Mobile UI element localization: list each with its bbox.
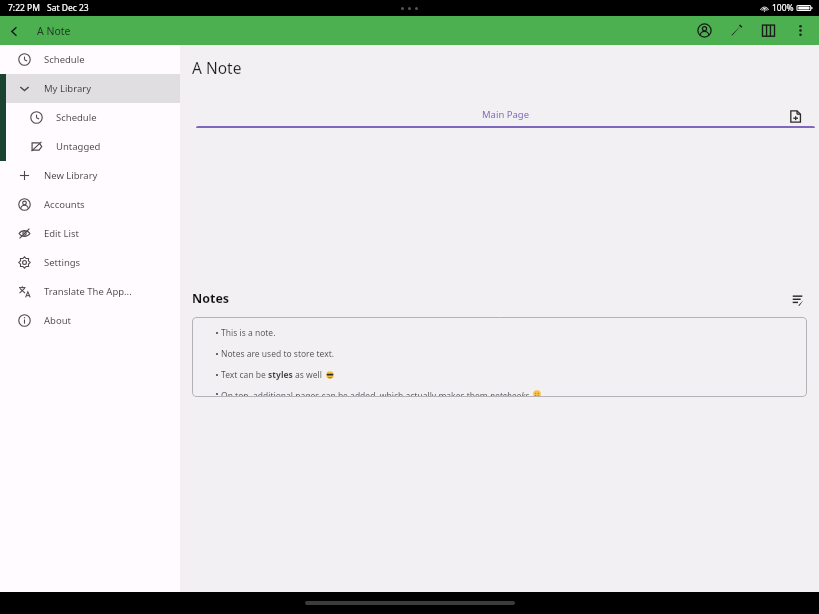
button[interactable]: View columns xyxy=(752,16,784,45)
button[interactable]: Settings xyxy=(0,248,180,277)
staticText: Untagged xyxy=(56,140,101,153)
button[interactable]: Edit xyxy=(720,16,752,45)
staticText: 100% xyxy=(772,2,794,14)
button[interactable]: Schedule xyxy=(0,103,180,132)
staticText: Main Page xyxy=(482,108,530,121)
button[interactable]: Main Page xyxy=(192,106,819,128)
button[interactable]: Add page xyxy=(785,106,805,126)
staticText: About xyxy=(44,314,71,327)
staticText: My Library xyxy=(44,82,92,95)
staticText: Schedule xyxy=(44,53,85,66)
staticText: Settings xyxy=(44,256,81,269)
button[interactable]: This is a note. xyxy=(192,317,807,397)
staticText: A Note xyxy=(37,24,71,38)
button[interactable]: My Library xyxy=(0,74,180,103)
button[interactable]: More options xyxy=(784,16,816,45)
button[interactable]: Untagged xyxy=(0,132,180,161)
staticText: Translate The App... xyxy=(44,285,132,298)
staticText: This is a note. xyxy=(221,327,276,339)
button[interactable]: About xyxy=(0,306,180,335)
button[interactable]: Accounts xyxy=(0,190,180,219)
staticText: Accounts xyxy=(44,198,85,211)
button[interactable]: New Library xyxy=(0,161,180,190)
staticText: Schedule xyxy=(56,111,97,124)
staticText: Notes xyxy=(192,290,230,307)
staticText: 7:22 PM xyxy=(8,2,40,14)
staticText: Edit List xyxy=(44,227,79,240)
staticText: A Note xyxy=(192,57,242,78)
staticText: Text can be styles as well xyxy=(221,369,325,381)
staticText: Sat Dec 23 xyxy=(47,2,89,14)
button[interactable]: Back xyxy=(0,17,28,45)
button[interactable]: Edit List xyxy=(0,219,180,248)
button[interactable]: Account xyxy=(688,16,720,45)
staticText: Notes are used to store text. xyxy=(221,348,335,360)
staticText: New Library xyxy=(44,169,98,182)
button[interactable]: Translate The App... xyxy=(0,277,180,306)
button[interactable]: Edit notes xyxy=(789,291,807,309)
staticText: On top, additional pages can be added, w… xyxy=(221,390,532,397)
button[interactable]: Schedule xyxy=(0,45,180,74)
